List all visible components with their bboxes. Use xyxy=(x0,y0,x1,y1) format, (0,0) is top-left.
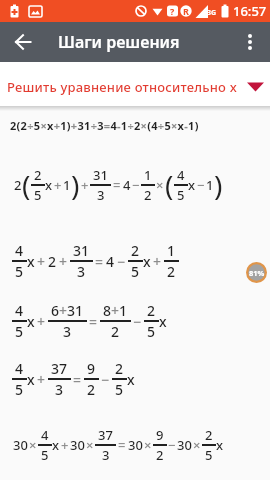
staticText: 5 xyxy=(147,322,156,341)
staticText: 5 xyxy=(41,446,49,464)
staticText: × xyxy=(144,436,152,454)
staticText: 1 xyxy=(63,176,71,194)
staticText: 4 xyxy=(177,166,185,184)
staticText: 2 xyxy=(14,176,22,194)
staticText: 2 xyxy=(156,446,164,464)
staticText: − xyxy=(101,370,110,389)
staticText: 2(2÷5×x+1)+31÷3=4-1÷2×(4÷5×x-1) xyxy=(10,118,199,133)
staticText: 9 xyxy=(87,359,96,378)
staticText: 37 xyxy=(98,426,113,444)
staticText: 2 xyxy=(147,301,156,320)
staticText: 16:57 xyxy=(233,2,267,20)
button[interactable] xyxy=(0,22,46,62)
staticText: 3 xyxy=(55,380,64,399)
staticText: 5 xyxy=(15,262,24,281)
staticText: 4 xyxy=(15,359,24,378)
staticText: 2 xyxy=(115,359,124,378)
staticText: + xyxy=(37,312,46,331)
staticText: − xyxy=(117,252,126,271)
staticText: 3 xyxy=(77,262,86,281)
staticText: = xyxy=(73,370,82,389)
staticText: 5 xyxy=(115,380,124,399)
staticText: = xyxy=(118,436,126,454)
staticText: 4 xyxy=(106,252,115,271)
staticText: x xyxy=(27,252,35,271)
staticText: − xyxy=(168,436,176,454)
staticText: x xyxy=(127,370,135,389)
staticText: = xyxy=(95,252,104,271)
staticText: ) xyxy=(71,166,80,204)
button[interactable] xyxy=(230,22,270,62)
staticText: 1 xyxy=(206,176,214,194)
staticText: Решить уравнение относительно x xyxy=(7,78,237,96)
staticText: 2 xyxy=(167,262,176,281)
staticText: 4 xyxy=(15,241,24,260)
staticText: R xyxy=(183,5,189,17)
staticText: + xyxy=(37,252,46,271)
staticText: = xyxy=(89,312,98,331)
staticText: 2 xyxy=(48,252,57,271)
staticText: − xyxy=(197,176,205,194)
staticText: × xyxy=(29,436,37,454)
staticText: x xyxy=(188,176,196,194)
staticText: + xyxy=(61,436,69,454)
staticText: 30 xyxy=(13,436,28,454)
staticText: + xyxy=(54,176,62,194)
staticText: 6+31 xyxy=(51,301,84,320)
staticText: × xyxy=(193,436,201,454)
staticText: 1 xyxy=(144,166,152,184)
staticText: ? xyxy=(170,5,175,17)
staticText: 3G xyxy=(207,8,217,18)
staticText: − xyxy=(132,176,140,194)
staticText: 37 xyxy=(51,359,68,378)
staticText: ( xyxy=(165,166,174,204)
staticText: 8+1 xyxy=(103,301,128,320)
staticText: 31 xyxy=(93,166,108,184)
staticText: 30 xyxy=(70,436,85,454)
staticText: 5 xyxy=(131,262,140,281)
staticText: 1 xyxy=(167,241,176,260)
staticText: = xyxy=(113,176,121,194)
staticText: 2 xyxy=(131,241,140,260)
staticText: 3 xyxy=(102,446,110,464)
staticText: x xyxy=(143,252,151,271)
staticText: x xyxy=(159,312,167,331)
staticText: x xyxy=(27,312,35,331)
staticText: x xyxy=(27,370,35,389)
staticText: Шаги решения xyxy=(58,31,180,53)
staticText: 4 xyxy=(15,301,24,320)
button[interactable]: Решить уравнение относительно x xyxy=(0,62,270,106)
staticText: x xyxy=(45,176,53,194)
staticText: 30 xyxy=(177,436,192,454)
staticText: × xyxy=(156,176,164,194)
staticText: 81% xyxy=(249,268,265,278)
staticText: 9 xyxy=(156,426,164,444)
staticText: + xyxy=(37,370,46,389)
staticText: 5 xyxy=(177,186,185,204)
staticText: 2 xyxy=(205,426,213,444)
staticText: + xyxy=(153,252,162,271)
staticText: ( xyxy=(22,166,31,204)
staticText: 3 xyxy=(97,186,105,204)
staticText: × xyxy=(86,436,94,454)
staticText: 3 xyxy=(63,322,72,341)
staticText: + xyxy=(81,176,89,194)
staticText: 4 xyxy=(123,176,131,194)
staticText: 5 xyxy=(15,322,24,341)
staticText: 5 xyxy=(15,380,24,399)
staticText: 31 xyxy=(73,241,90,260)
staticText: + xyxy=(59,252,68,271)
staticText: 30 xyxy=(128,436,143,454)
staticText: x xyxy=(216,436,224,454)
staticText: 5 xyxy=(34,186,42,204)
staticText: ) xyxy=(214,166,223,204)
staticText: 2 xyxy=(34,166,42,184)
staticText: x xyxy=(52,436,60,454)
staticText: 2 xyxy=(111,322,120,341)
staticText: 4 xyxy=(41,426,49,444)
staticText: 5 xyxy=(205,446,213,464)
staticText: 2 xyxy=(87,380,96,399)
staticText: 2 xyxy=(144,186,152,204)
staticText: − xyxy=(133,312,142,331)
